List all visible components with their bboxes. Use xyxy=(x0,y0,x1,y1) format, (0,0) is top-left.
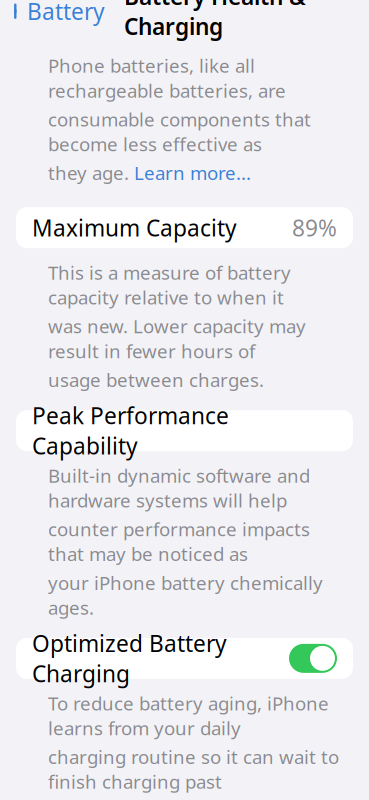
button[interactable]: Battery xyxy=(0,0,113,32)
staticText: This is a measure of battery capacity re… xyxy=(48,260,291,310)
staticText: your iPhone battery chemically ages. xyxy=(48,570,323,620)
staticText: To reduce battery aging, iPhone learns f… xyxy=(48,691,329,740)
button[interactable]: Learn more... xyxy=(134,160,251,185)
staticText: was new. Lower capacity may result in fe… xyxy=(48,314,306,363)
button[interactable]: Optimized Battery Charging xyxy=(16,638,353,679)
staticText: Built-in dynamic software and hardware s… xyxy=(48,463,310,513)
staticText: Battery xyxy=(27,0,105,26)
staticText: Peak Performance Capability xyxy=(32,400,229,461)
staticText: they age. xyxy=(48,160,134,185)
staticText: charging routine so it can wait to finis… xyxy=(48,744,339,794)
staticText: Maximum Capacity xyxy=(32,213,237,243)
staticText: Optimized Battery Charging xyxy=(32,628,227,688)
staticText: Phone batteries, like all rechargeable b… xyxy=(48,53,286,103)
staticText: Learn more... xyxy=(134,160,251,185)
button[interactable]: Peak Performance Capability xyxy=(16,410,353,451)
staticText: 89% xyxy=(292,213,337,243)
staticText: consumable components that become less e… xyxy=(48,107,311,156)
staticText: Battery Health & Charging xyxy=(124,0,306,41)
staticText: usage between charges. xyxy=(48,367,264,392)
staticText: counter performance impacts that may be … xyxy=(48,517,310,566)
